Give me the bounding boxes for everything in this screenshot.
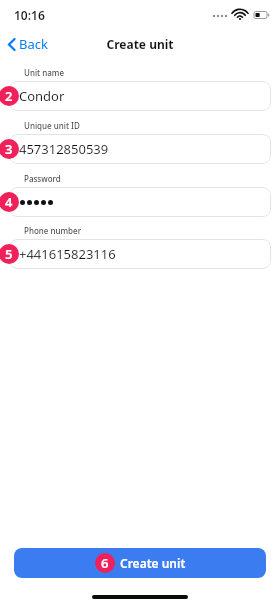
staticText: 10:16 — [14, 7, 45, 23]
button[interactable]: 457312850539 — [9, 134, 271, 164]
staticText: Create unit — [106, 36, 174, 52]
other: Back — [8, 38, 16, 51]
staticText: Create unit — [120, 555, 186, 571]
staticText: Unique unit ID — [24, 120, 80, 131]
button[interactable]: Condor — [9, 81, 271, 111]
staticText: Back — [19, 35, 48, 53]
staticText: 4 — [5, 193, 13, 211]
staticText: 6 — [101, 554, 109, 572]
staticText: Unit name — [24, 67, 64, 78]
staticText: +441615823116 — [19, 245, 116, 263]
staticText: 2 — [5, 87, 13, 105]
staticText: 3 — [5, 140, 13, 158]
staticText: Condor — [19, 87, 65, 105]
staticText: Password — [24, 173, 61, 184]
staticText: Phone number — [24, 225, 82, 236]
staticText: 5 — [5, 245, 13, 263]
staticText: 457312850539 — [19, 140, 109, 158]
button[interactable]: +441615823116 — [9, 239, 271, 269]
button[interactable] — [9, 187, 271, 217]
button[interactable]: 6 — [14, 548, 266, 578]
button[interactable]: Back — [0, 31, 56, 57]
